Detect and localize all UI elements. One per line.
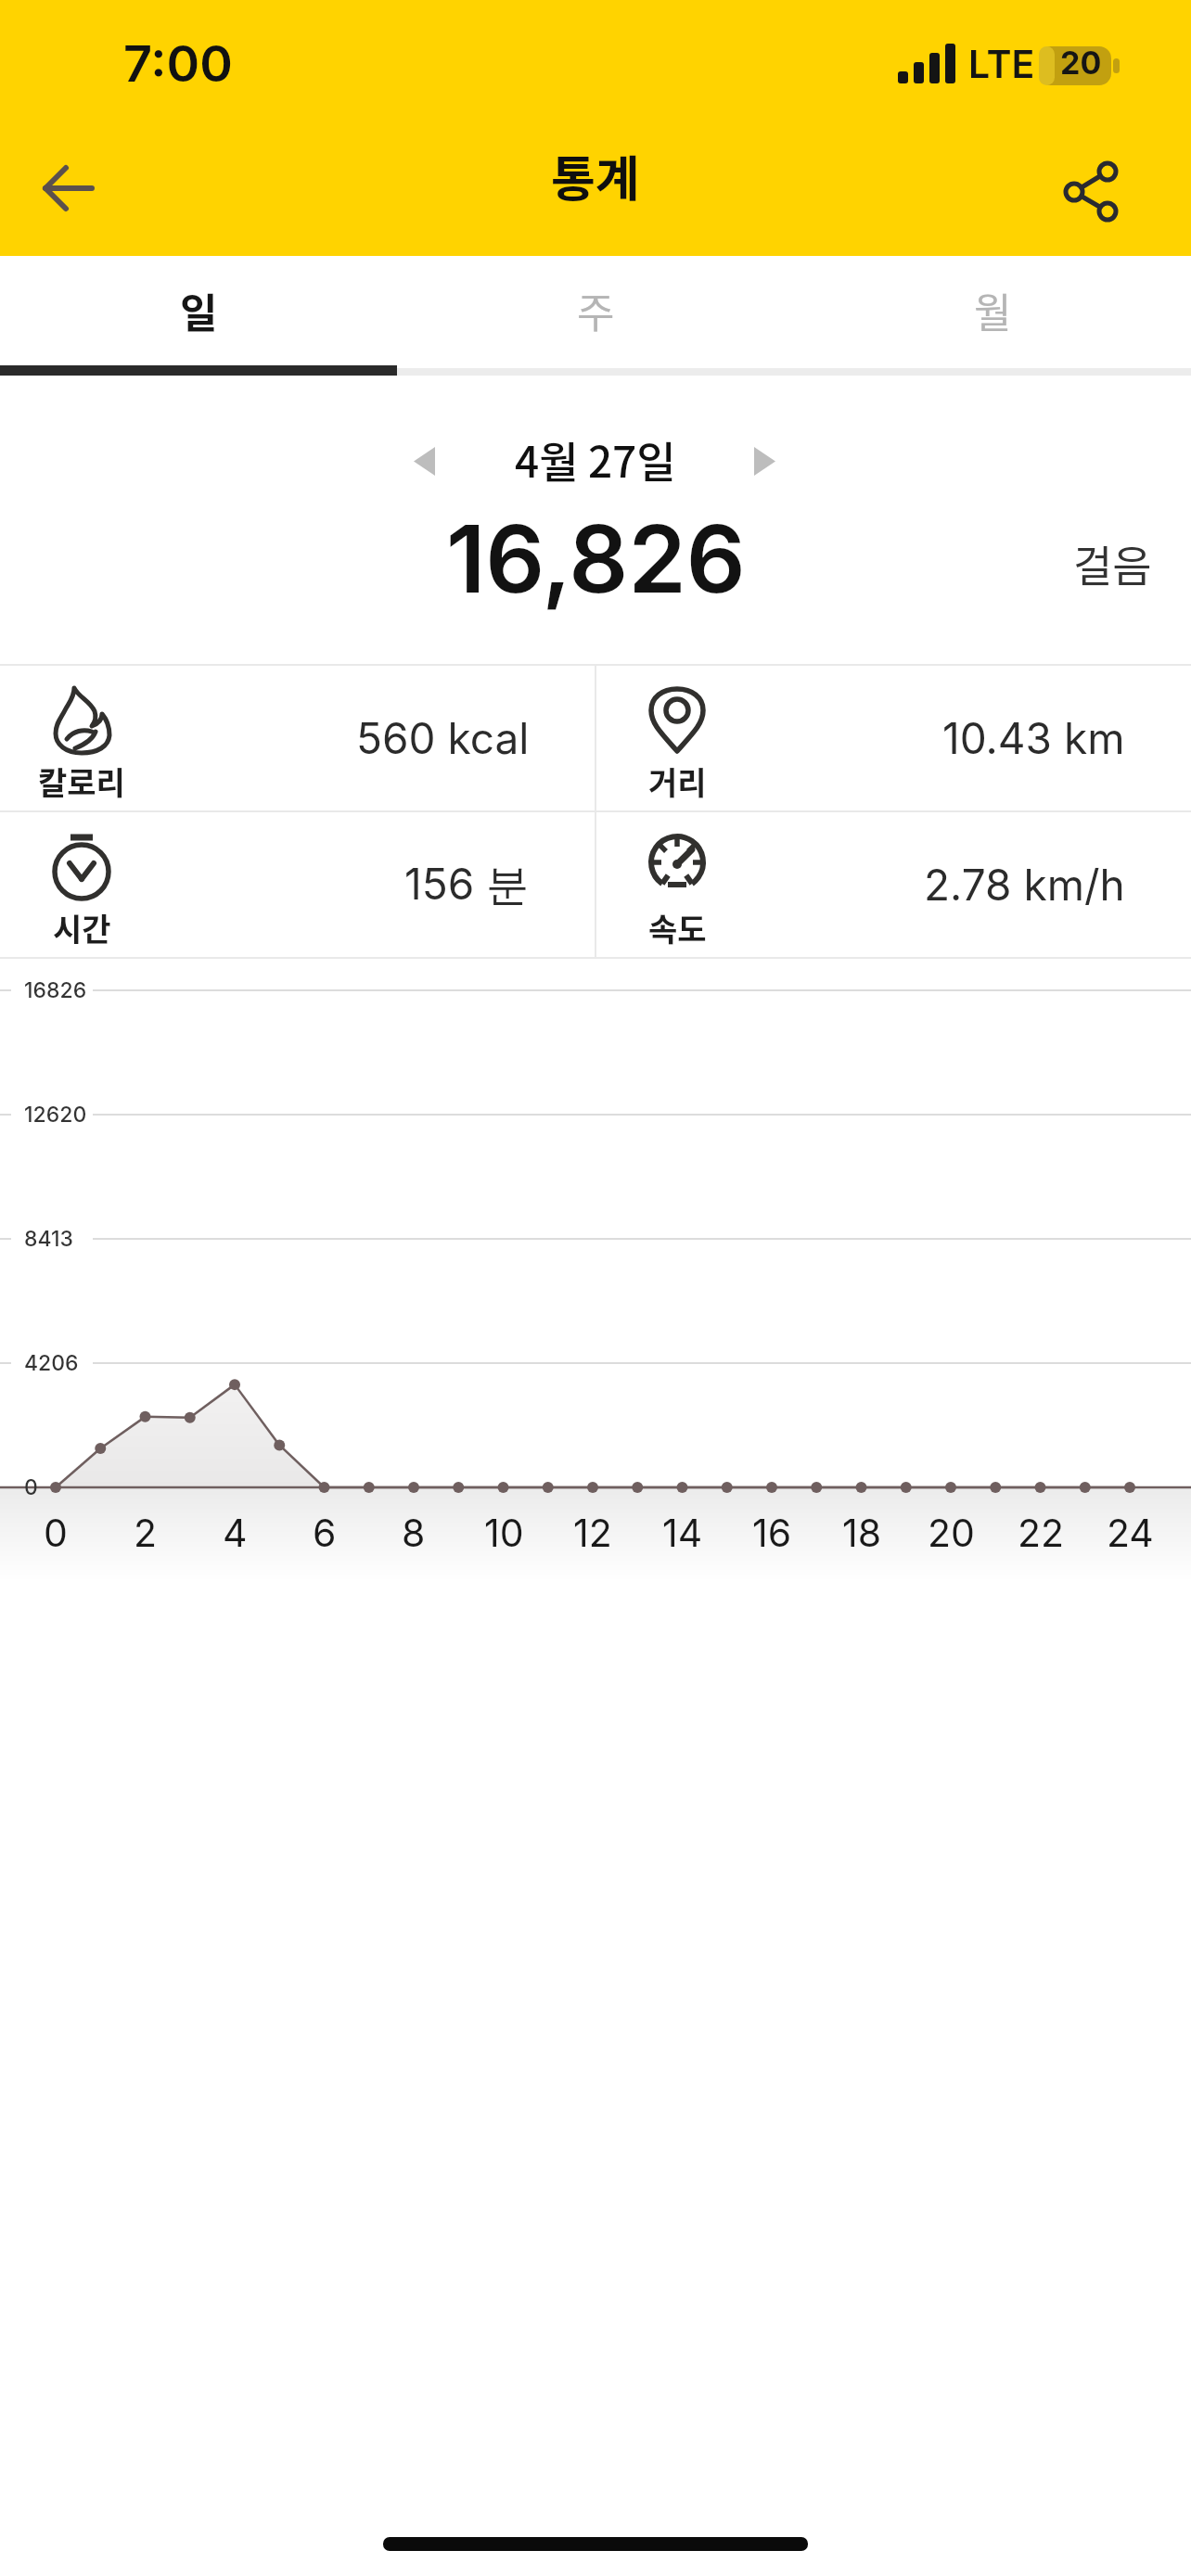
button[interactable]: 거리	[595, 666, 1191, 810]
button[interactable]	[737, 436, 793, 491]
staticText: 12620	[24, 1102, 87, 1128]
staticText: LTE	[968, 41, 1035, 87]
staticText: 16826	[24, 977, 87, 1003]
staticText: 0	[24, 1474, 38, 1500]
staticText: 일	[180, 281, 218, 340]
staticText: 4206	[24, 1350, 79, 1376]
staticText: 통계	[551, 141, 640, 210]
button[interactable]: 칼로리	[0, 666, 595, 810]
staticText: 거리	[648, 759, 707, 804]
staticText: 0	[44, 1510, 68, 1556]
staticText: 칼로리	[38, 759, 125, 804]
button[interactable]	[399, 436, 455, 491]
staticText: 4	[223, 1510, 248, 1556]
staticText: 10	[484, 1510, 524, 1556]
staticText: 560 kcal	[356, 712, 530, 764]
staticText: 주	[577, 281, 615, 340]
staticText: 2	[134, 1510, 158, 1556]
staticText: 4월 27일	[515, 428, 676, 491]
staticText: 20	[928, 1510, 975, 1556]
staticText: 24	[1107, 1510, 1154, 1556]
staticText: 월	[974, 281, 1012, 340]
staticText: 시간	[53, 905, 111, 950]
staticText: 18	[842, 1510, 882, 1556]
button[interactable]: 일	[0, 256, 397, 365]
button[interactable]: 시간	[0, 812, 595, 957]
staticText: 걸음	[1073, 532, 1152, 594]
staticText: 6	[313, 1510, 337, 1556]
staticText: 2.78 km/h	[924, 859, 1125, 911]
staticText: 8413	[24, 1226, 73, 1252]
button[interactable]	[1044, 139, 1146, 241]
staticText: 20	[1060, 44, 1102, 82]
staticText: 22	[1018, 1510, 1065, 1556]
button[interactable]: 주	[397, 256, 794, 365]
staticText: 16,826	[446, 503, 746, 615]
staticText: 14	[662, 1510, 703, 1556]
staticText: 12	[573, 1510, 612, 1556]
staticText: 16	[752, 1510, 792, 1556]
button[interactable]	[19, 147, 111, 230]
staticText: 10.43 km	[942, 712, 1125, 764]
button[interactable]: 월	[794, 256, 1191, 365]
staticText: 156 분	[404, 858, 530, 912]
staticText: 8	[402, 1510, 426, 1556]
staticText: 속도	[648, 905, 707, 950]
button[interactable]: 속도	[595, 812, 1191, 957]
staticText: 7:00	[123, 33, 233, 94]
